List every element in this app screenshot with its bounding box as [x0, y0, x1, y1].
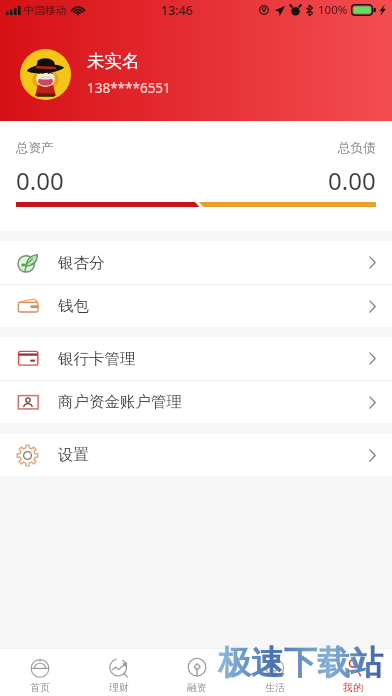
- staticText: 商户资金账户管理: [58, 392, 182, 412]
- staticText: 138****6551: [87, 79, 171, 97]
- staticText: 中国移动: [24, 4, 66, 17]
- staticText: 首页: [30, 681, 50, 694]
- staticText: 100%: [318, 2, 348, 18]
- button[interactable]: 未实名: [20, 49, 392, 100]
- staticText: 极速下载站: [218, 642, 383, 684]
- staticText: 设置: [58, 445, 89, 465]
- staticText: 理财: [109, 681, 129, 694]
- staticText: 13:46: [161, 2, 194, 19]
- staticText: 钱包: [58, 296, 89, 316]
- staticText: 银杏分: [58, 253, 105, 273]
- staticText: 0.00: [328, 164, 376, 197]
- button[interactable]: 生活: [236, 649, 314, 696]
- button[interactable]: 融资: [158, 649, 236, 696]
- staticText: 0.00: [16, 164, 64, 197]
- staticText: 总负债: [338, 140, 376, 156]
- staticText: 生活: [265, 681, 285, 694]
- button[interactable]: 设置: [0, 434, 392, 476]
- staticText: 银行卡管理: [58, 349, 136, 369]
- staticText: 我的: [343, 681, 363, 694]
- button[interactable]: 商户资金账户管理: [0, 381, 392, 423]
- button[interactable]: 首页: [0, 649, 79, 696]
- button[interactable]: 理财: [79, 649, 158, 696]
- staticText: 融资: [187, 681, 207, 694]
- button[interactable]: 银杏分: [0, 241, 392, 284]
- staticText: 未实名: [87, 50, 140, 72]
- button[interactable]: 钱包: [0, 285, 392, 327]
- button[interactable]: 银行卡管理: [0, 337, 392, 380]
- staticText: 总资产: [16, 140, 54, 156]
- button[interactable]: 我的: [314, 649, 392, 696]
